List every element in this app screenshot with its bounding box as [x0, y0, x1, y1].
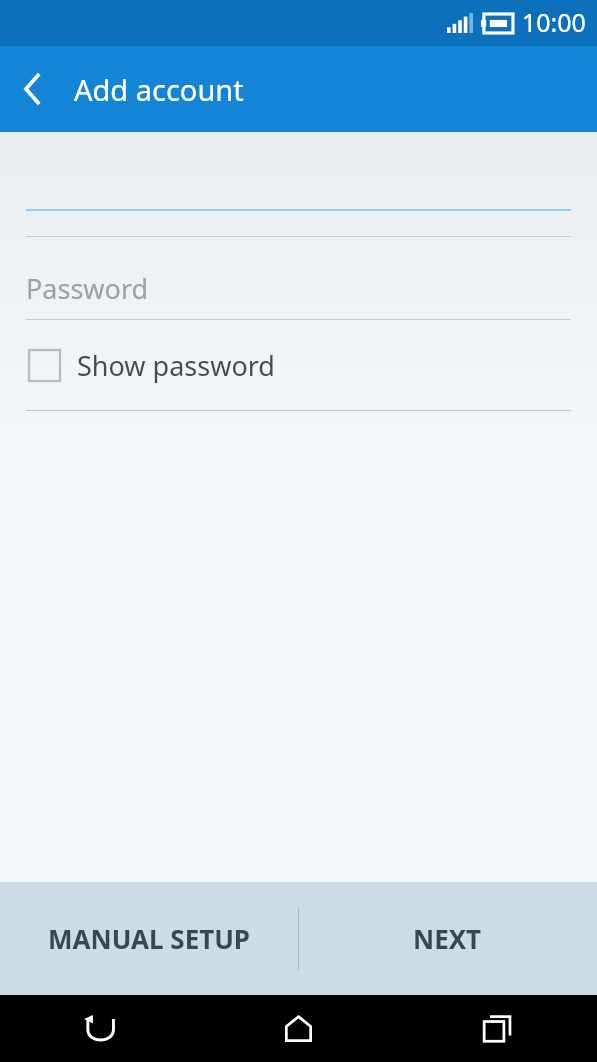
button[interactable]: Password [0, 237, 597, 319]
button[interactable]: Back [0, 46, 66, 132]
staticText: NEXT [413, 921, 482, 956]
staticText: Add account [74, 70, 244, 109]
staticText: 10:00 [522, 5, 586, 39]
button[interactable]: NEXT [298, 882, 597, 995]
staticText: Show password [77, 347, 275, 384]
button[interactable]: Home [199, 995, 398, 1062]
staticText: MANUAL SETUP [48, 921, 251, 956]
button[interactable]: Back [0, 995, 199, 1062]
staticText: Password [26, 270, 149, 307]
button[interactable]: Recent apps [398, 995, 597, 1062]
button[interactable]: Show password [0, 320, 597, 410]
button[interactable]: MANUAL SETUP [0, 882, 298, 995]
